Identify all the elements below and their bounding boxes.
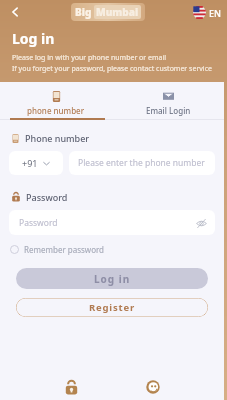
button[interactable]: Remember password: [10, 244, 105, 255]
staticText: Register: [89, 301, 135, 314]
staticText: Remember password: [24, 244, 105, 255]
staticText: Email Login: [146, 105, 191, 116]
staticText: Big: [75, 5, 92, 19]
button[interactable]: Back: [4, 1, 26, 23]
staticText: phone number: [27, 105, 85, 116]
staticText: Password: [26, 191, 68, 203]
button[interactable]: Please enter the phone number: [69, 151, 215, 175]
button[interactable]: +91: [9, 151, 63, 175]
staticText: If you forget your password, please cont…: [12, 64, 212, 74]
staticText: Please enter the phone number: [78, 157, 205, 169]
staticText: Mumbai: [96, 5, 139, 19]
staticText: Log in: [12, 29, 55, 48]
button[interactable]: Show password: [191, 213, 211, 233]
staticText: +91: [22, 157, 38, 169]
button[interactable]: Password: [9, 210, 215, 235]
button[interactable]: EN: [193, 6, 221, 19]
button[interactable]: phone number: [0, 82, 112, 120]
button[interactable]: Customer service: [142, 376, 164, 398]
staticText: Log in: [94, 272, 131, 286]
staticText: EN: [209, 7, 221, 19]
button[interactable]: Log in: [16, 268, 208, 289]
button[interactable]: Forgot password: [60, 376, 82, 398]
button[interactable]: Register: [16, 298, 208, 317]
staticText: Password: [19, 217, 58, 229]
button[interactable]: Email Login: [112, 82, 224, 120]
staticText: Phone number: [25, 132, 90, 144]
button[interactable]: Big: [71, 3, 145, 21]
staticText: Please log in with your phone number or …: [12, 53, 167, 63]
